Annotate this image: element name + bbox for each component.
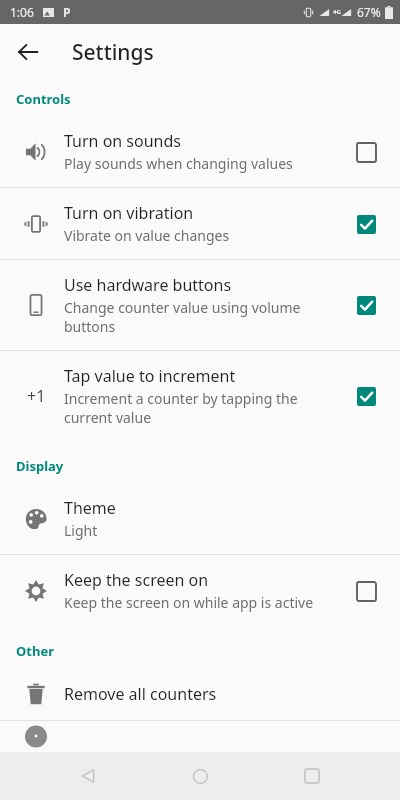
staticText: 1:06 xyxy=(10,4,34,20)
staticText: Use hardware buttons xyxy=(64,274,232,296)
staticText: Controls xyxy=(16,90,71,108)
staticText: Change counter value using volume button… xyxy=(64,298,336,336)
button[interactable]: Home xyxy=(176,752,224,800)
staticText: Light xyxy=(64,521,98,540)
button[interactable]: Keep the screen on xyxy=(0,555,400,626)
staticText: Display xyxy=(16,457,64,475)
button[interactable]: Use hardware buttons xyxy=(0,260,400,350)
staticText: Turn on vibration xyxy=(64,202,194,224)
button[interactable]: Recent apps xyxy=(288,752,336,800)
staticText: Keep the screen on xyxy=(64,569,209,591)
staticText: Theme xyxy=(64,497,116,519)
staticText: Settings xyxy=(72,38,154,67)
staticText: 4G xyxy=(333,8,341,16)
button[interactable]: Back xyxy=(8,32,48,72)
staticText: P xyxy=(63,4,71,20)
staticText: Turn on sounds xyxy=(64,130,181,152)
staticText: Play sounds when changing values xyxy=(64,154,293,173)
button[interactable]: Tap value to increment xyxy=(348,378,384,414)
staticText: 67% xyxy=(357,4,381,20)
button[interactable]: Turn on sounds xyxy=(348,134,384,170)
button[interactable]: Back xyxy=(64,752,112,800)
button[interactable]: Use hardware buttons xyxy=(348,287,384,323)
button[interactable]: Keep the screen on xyxy=(348,573,384,609)
staticText: Remove all counters xyxy=(64,683,217,705)
button[interactable]: Turn on vibration xyxy=(0,188,400,259)
button[interactable]: Remove all counters xyxy=(0,668,400,720)
staticText: Vibrate on value changes xyxy=(64,226,230,245)
button[interactable]: Turn on sounds xyxy=(0,116,400,187)
staticText: Increment a counter by tapping the curre… xyxy=(64,389,336,427)
button[interactable]: +1 xyxy=(0,351,400,441)
button[interactable]: Version xyxy=(0,721,400,752)
staticText: Tap value to increment xyxy=(64,365,236,387)
button[interactable]: Turn on vibration xyxy=(348,206,384,242)
staticText: Keep the screen on while app is active xyxy=(64,593,314,612)
staticText: +1 xyxy=(27,385,46,407)
button[interactable]: Theme xyxy=(0,483,400,554)
staticText: Other xyxy=(16,642,54,660)
